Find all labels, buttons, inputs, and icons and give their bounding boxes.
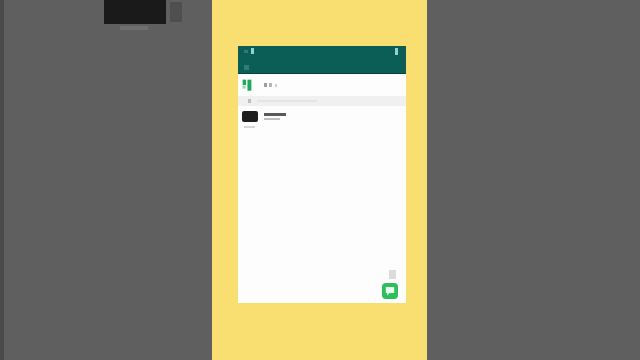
button[interactable] xyxy=(238,96,406,106)
button[interactable]: New chat xyxy=(382,283,398,299)
button[interactable] xyxy=(238,74,406,96)
button[interactable] xyxy=(238,106,406,126)
